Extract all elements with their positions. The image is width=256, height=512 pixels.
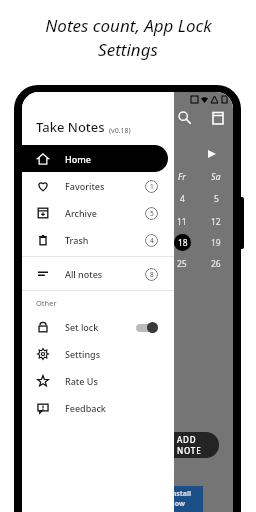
staticText: 25 bbox=[177, 258, 187, 270]
button[interactable]: Archive bbox=[22, 199, 168, 226]
button[interactable]: Home bbox=[22, 145, 168, 172]
staticText: Install Now bbox=[169, 489, 203, 509]
staticText: Take Notes bbox=[36, 118, 105, 136]
button[interactable]: Install Now bbox=[169, 486, 203, 512]
staticText: (v0.18) bbox=[109, 126, 131, 136]
staticText: ADD NOTE bbox=[177, 434, 209, 456]
staticText: Settings bbox=[98, 38, 158, 61]
staticText: Trash bbox=[65, 234, 89, 246]
button[interactable]: Favorites bbox=[22, 172, 168, 199]
staticText: 1 bbox=[150, 182, 154, 191]
button[interactable]: Set lock bbox=[22, 313, 168, 340]
button[interactable]: Trash bbox=[22, 226, 168, 253]
staticText: 4 bbox=[150, 236, 154, 245]
staticText: 5 bbox=[150, 209, 154, 218]
staticText: Set lock bbox=[65, 321, 99, 333]
staticText: 2:46 bbox=[27, 94, 41, 104]
button[interactable]: ADD NOTE bbox=[151, 432, 219, 458]
button[interactable]: Rate Us bbox=[22, 367, 168, 394]
staticText: 19 bbox=[211, 237, 221, 249]
staticText: Archive bbox=[65, 207, 97, 219]
button[interactable]: Settings bbox=[22, 340, 168, 367]
staticText: Notes count, App Lock bbox=[45, 14, 212, 37]
staticText: 8 bbox=[150, 270, 154, 279]
button[interactable]: All notes bbox=[22, 260, 168, 287]
button[interactable]: Feedback bbox=[22, 394, 168, 421]
staticText: 5 bbox=[214, 193, 219, 205]
staticText: Rate Us bbox=[65, 375, 98, 387]
staticText: Feedback bbox=[65, 402, 106, 414]
staticText: 11 bbox=[177, 216, 187, 228]
staticText: 12 bbox=[211, 216, 221, 228]
staticText: 26 bbox=[211, 258, 221, 270]
button[interactable]: Calendar bbox=[213, 108, 223, 126]
staticText: 18 bbox=[178, 237, 188, 249]
button[interactable]: Search bbox=[175, 108, 193, 126]
staticText: Favorites bbox=[65, 180, 105, 192]
staticText: Sa bbox=[211, 170, 221, 182]
staticText: Home bbox=[65, 153, 91, 165]
staticText: Settings bbox=[65, 348, 101, 360]
staticText: All notes bbox=[65, 268, 103, 280]
staticText: 4 bbox=[180, 193, 185, 205]
staticText: Fr bbox=[178, 170, 186, 182]
staticText: Other bbox=[36, 298, 57, 308]
